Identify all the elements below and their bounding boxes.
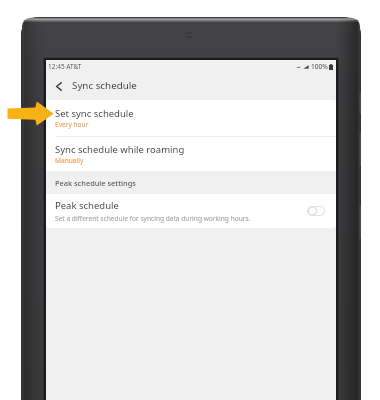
staticText: 100% (311, 62, 328, 71)
button[interactable]: Set sync schedule (46, 100, 336, 136)
staticText: Sync schedule (72, 79, 137, 92)
staticText: Set sync schedule (55, 107, 134, 120)
staticText: Every hour (55, 120, 89, 129)
staticText: Peak schedule settings (55, 178, 136, 188)
staticText: Peak schedule (55, 199, 119, 212)
button[interactable]: Sync schedule while roaming (46, 137, 336, 171)
staticText: Manually (55, 156, 84, 165)
staticText: Set a different schedule for syncing dat… (55, 214, 251, 223)
staticText: 12:45 AT&T (48, 62, 82, 71)
staticText: Sync schedule while roaming (55, 143, 185, 156)
button[interactable]: Peak schedule toggle (304, 204, 328, 218)
button[interactable]: Back (48, 75, 70, 97)
button[interactable]: Peak schedule (46, 194, 336, 228)
